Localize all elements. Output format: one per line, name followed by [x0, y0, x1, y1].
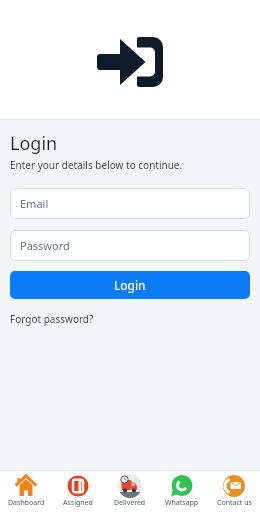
- button[interactable]: Assigned: [52, 471, 104, 512]
- staticText: Login: [10, 131, 58, 156]
- staticText: Enter your details below to continue.: [10, 158, 183, 172]
- staticText: Delivered: [114, 498, 146, 508]
- button[interactable]: Email: [10, 188, 250, 219]
- button[interactable]: Whatsapp: [156, 471, 208, 512]
- staticText: Contact us: [217, 498, 252, 508]
- staticText: Password: [20, 238, 70, 253]
- staticText: Email: [20, 196, 49, 211]
- button[interactable]: Password: [10, 230, 250, 261]
- staticText: Login: [114, 277, 146, 293]
- button[interactable]: Dashboard: [0, 471, 52, 512]
- button[interactable]: Forgot password?: [10, 312, 94, 326]
- staticText: Dashboard: [8, 498, 45, 508]
- staticText: Assigned: [63, 498, 93, 508]
- button[interactable]: Delivered: [104, 471, 156, 512]
- button[interactable]: Login: [10, 271, 250, 299]
- button[interactable]: Contact us: [208, 471, 260, 512]
- staticText: Whatsapp: [165, 498, 199, 508]
